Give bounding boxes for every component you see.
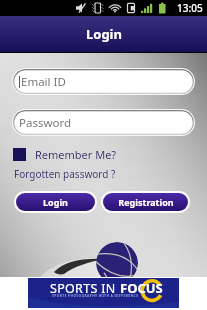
button[interactable]: Registration (103, 193, 188, 211)
button[interactable]: SPORTS IN (28, 278, 179, 308)
button[interactable]: Email ID (12, 68, 195, 95)
staticText: 13:05 (177, 1, 203, 15)
staticText: FOCUS (120, 279, 163, 297)
staticText: Login (86, 25, 122, 43)
staticText: Email ID (21, 74, 66, 90)
staticText: SPORTS PHOTOGRAPHY WITH A DIFFERENCE (52, 293, 139, 298)
button[interactable]: Forgotten password ? (14, 167, 116, 181)
staticText: Remember Me? (35, 147, 117, 162)
button[interactable]: Password (12, 109, 195, 136)
staticText: Registration (118, 196, 174, 208)
button[interactable]: Remember Me? (13, 147, 117, 162)
button[interactable]: Login (16, 193, 95, 211)
staticText: SPORTS IN (50, 280, 120, 297)
staticText: Login (43, 196, 68, 208)
staticText: Password (19, 115, 72, 131)
